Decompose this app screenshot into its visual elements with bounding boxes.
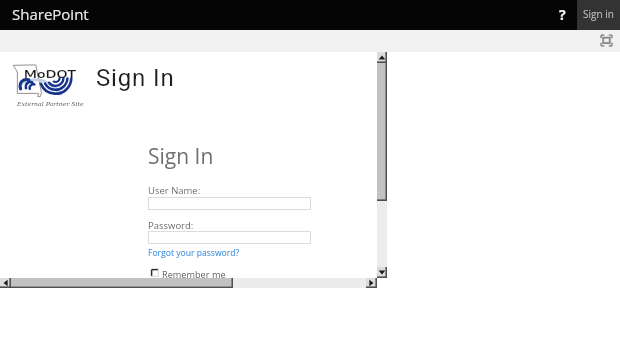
staticText: Sign in [583, 7, 614, 21]
button[interactable]: Help [547, 0, 577, 30]
button[interactable]: Remember me [151, 268, 226, 281]
button[interactable]: Fit page to screen [599, 33, 614, 48]
staticText: External Partner Site [17, 100, 84, 107]
button[interactable]: Forgot your password? [148, 247, 240, 259]
staticText: Remember me [162, 268, 226, 281]
button[interactable]: Sign in [577, 0, 620, 30]
button[interactable]: Horizontal scrollbar [0, 278, 377, 288]
staticText: MoDOT [24, 68, 77, 80]
staticText: Sign In [148, 142, 214, 171]
button[interactable]: Vertical scrollbar [377, 52, 387, 278]
button[interactable] [148, 231, 311, 244]
staticText: User Name: [148, 184, 201, 197]
button[interactable] [148, 197, 311, 210]
button[interactable]: SharePoint [12, 0, 89, 30]
staticText: Password: [148, 219, 194, 232]
staticText: ? [559, 5, 566, 24]
staticText: SharePoint [12, 4, 89, 24]
staticText: Sign In [96, 64, 175, 92]
